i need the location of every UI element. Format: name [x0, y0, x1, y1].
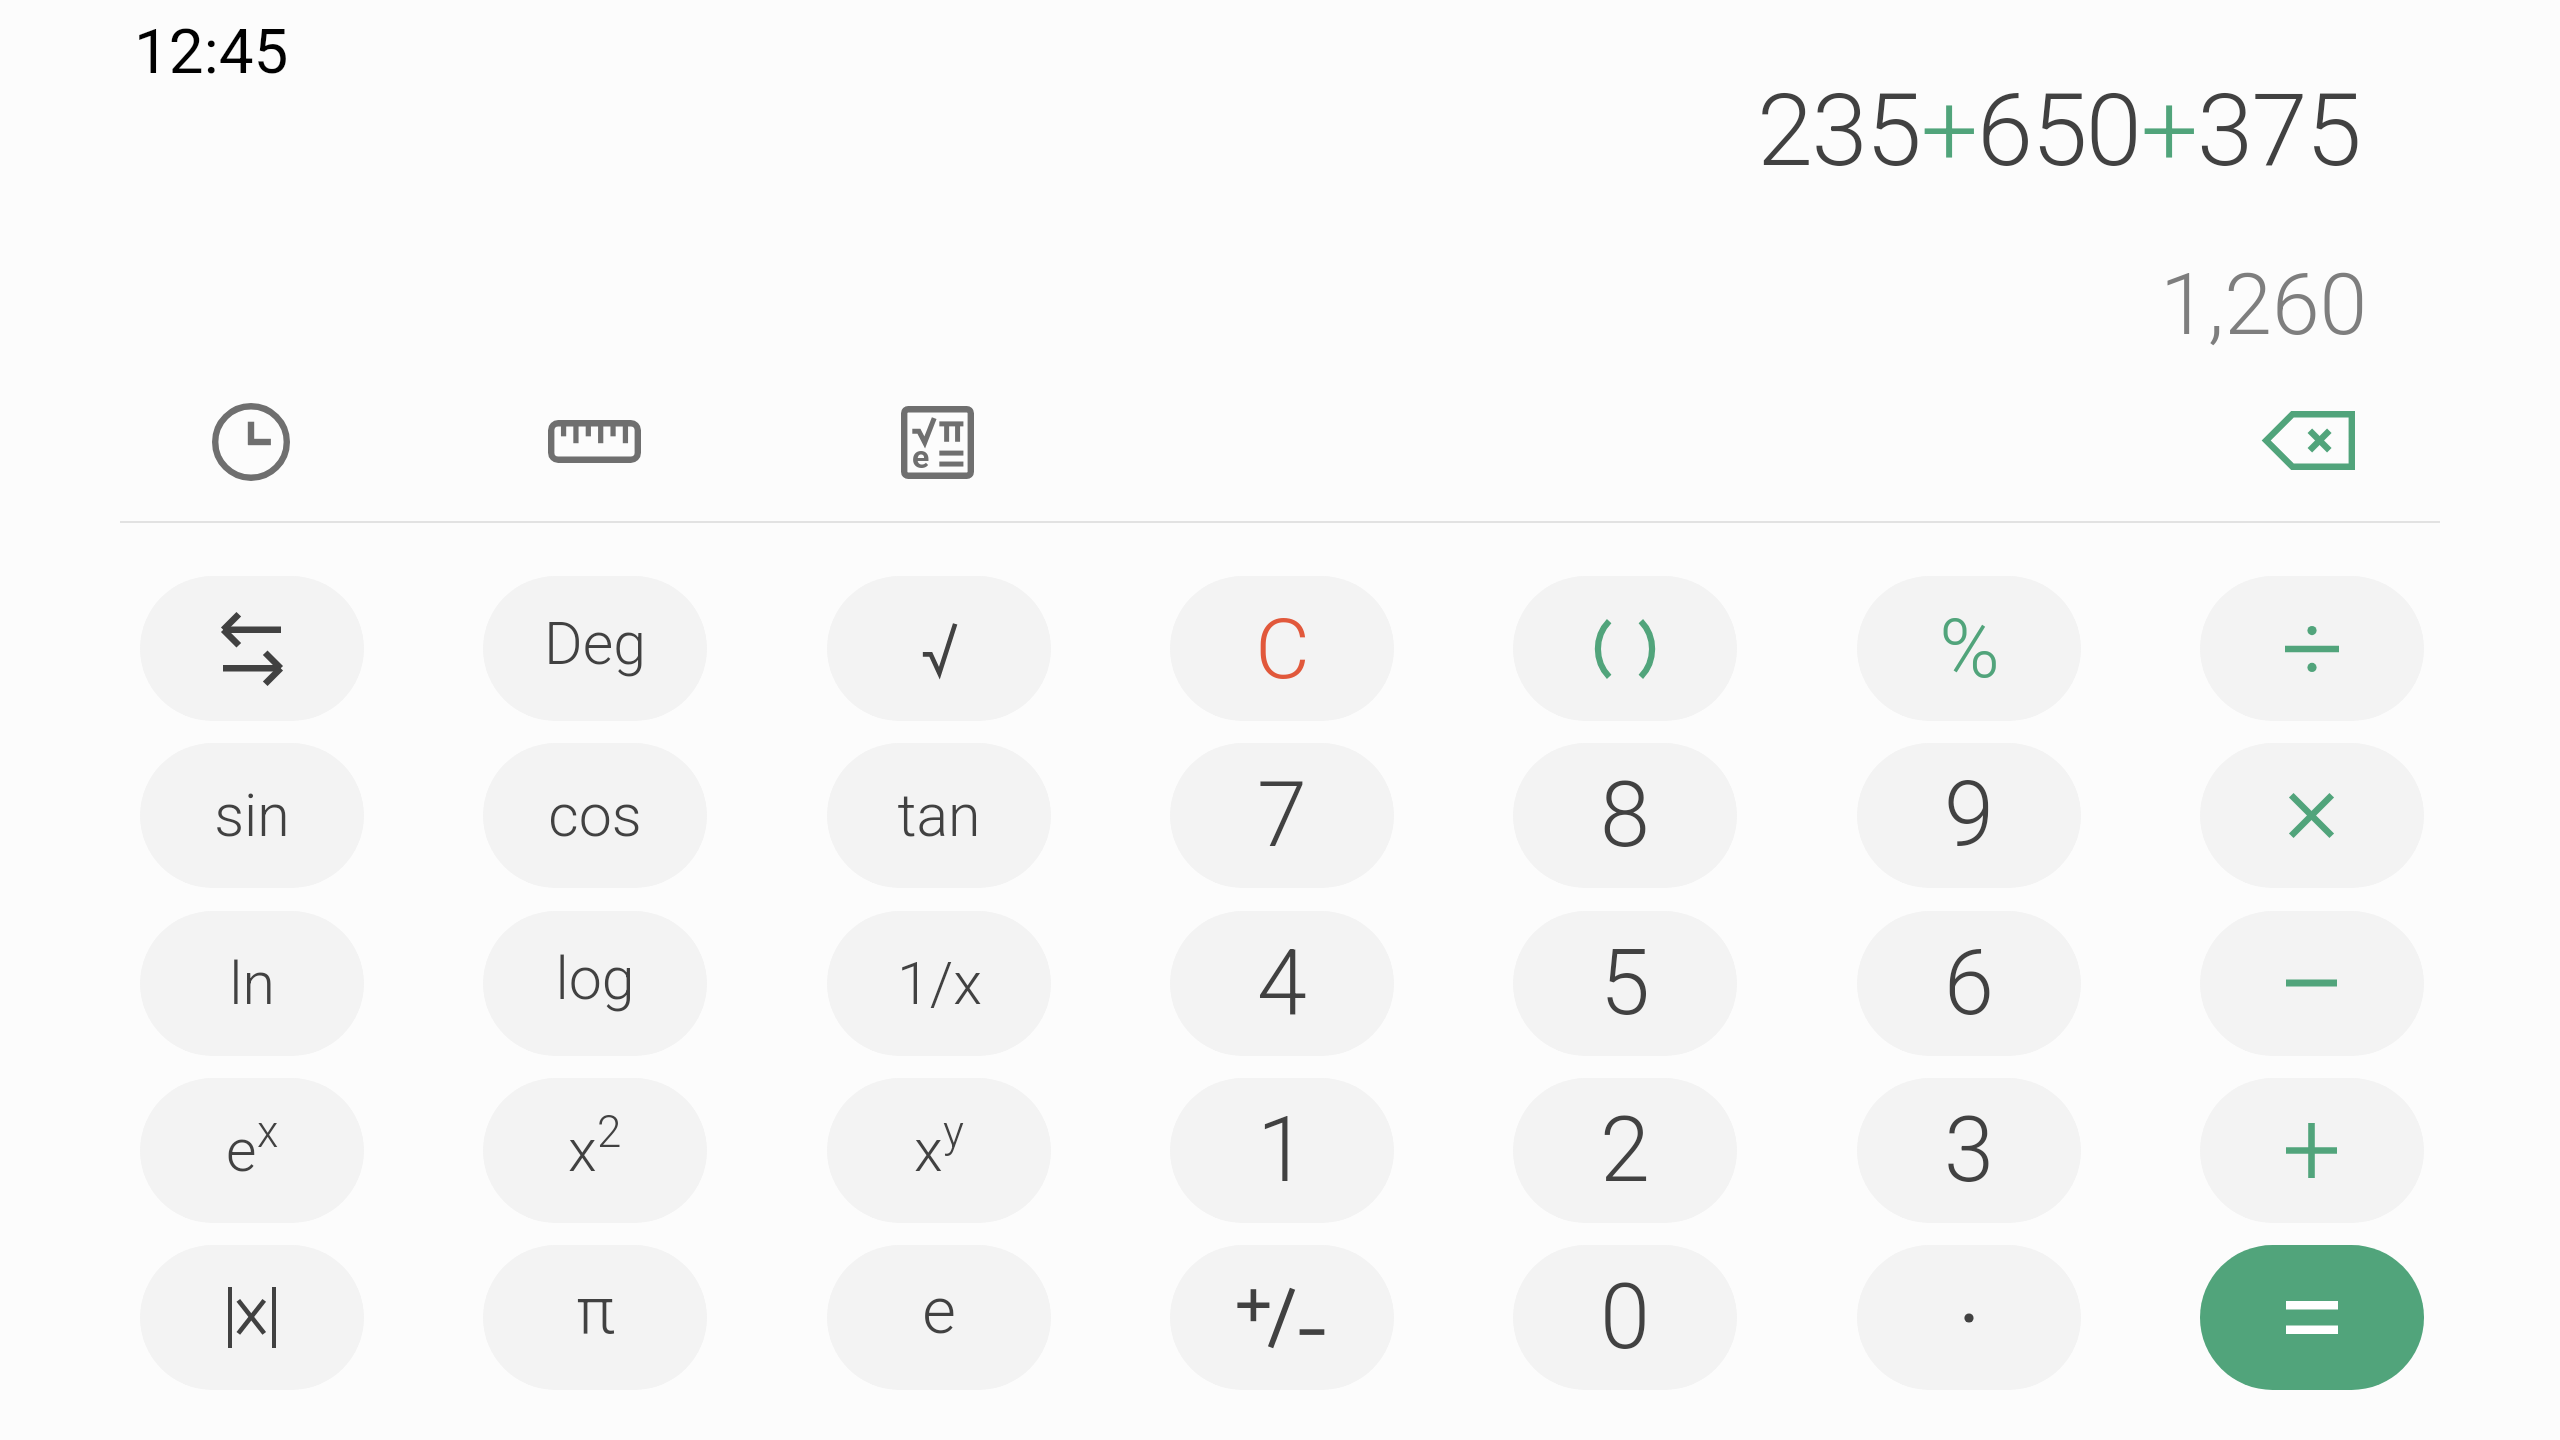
staticText: e: [912, 438, 930, 476]
staticText: cos: [548, 781, 642, 850]
staticText: 1/x: [897, 949, 982, 1018]
button[interactable]: cos: [483, 743, 707, 888]
staticText: 6: [1944, 931, 1994, 1036]
staticText: +: [2141, 71, 2197, 189]
staticText: x: [914, 1116, 943, 1185]
button[interactable]: Parentheses: [1513, 576, 1737, 721]
staticText: 0: [1600, 1265, 1650, 1370]
button[interactable]: C: [1170, 576, 1394, 721]
staticText: 3: [1944, 1098, 1994, 1203]
button[interactable]: 6: [1857, 911, 2081, 1056]
button[interactable]: Deg: [483, 576, 707, 721]
staticText: +: [1921, 71, 1977, 189]
button[interactable]: Swap: [140, 576, 364, 721]
button[interactable]: Absolute value: [140, 1245, 364, 1390]
button[interactable]: Equals: [2200, 1245, 2424, 1390]
staticText: 235: [1757, 71, 1921, 189]
button[interactable]: 3: [1857, 1078, 2081, 1223]
staticText: 2: [1600, 1098, 1650, 1203]
staticText: e: [226, 1116, 257, 1185]
staticText: 4: [1257, 931, 1307, 1036]
staticText: C: [1255, 600, 1310, 698]
staticText: %: [1939, 601, 2000, 697]
staticText: y: [943, 1106, 964, 1158]
button[interactable]: Plus: [2200, 1078, 2424, 1223]
button[interactable]: %: [1857, 576, 2081, 721]
staticText: 375: [2197, 71, 2361, 189]
button[interactable]: Backspace: [2219, 375, 2399, 505]
button[interactable]: Scientific functions: [852, 377, 1022, 507]
staticText: ln: [229, 949, 275, 1018]
button[interactable]: e to the x: [140, 1078, 364, 1223]
button[interactable]: 7: [1170, 743, 1394, 888]
staticText: 2: [597, 1106, 622, 1158]
button[interactable]: 4: [1170, 911, 1394, 1056]
staticText: 8: [1600, 763, 1650, 868]
staticText: x: [257, 1106, 279, 1158]
staticText: tan: [897, 781, 981, 850]
staticText: sin: [214, 781, 290, 850]
staticText: 1: [1257, 1098, 1307, 1203]
button[interactable]: Decimal point: [1857, 1245, 2081, 1390]
button[interactable]: Unit converter: [509, 376, 679, 506]
button[interactable]: π: [483, 1245, 707, 1390]
staticText: 1,260: [2160, 254, 2368, 355]
button[interactable]: Divide: [2200, 576, 2424, 721]
button[interactable]: Plus minus: [1170, 1245, 1394, 1390]
staticText: 650: [1977, 71, 2141, 189]
button[interactable]: x to the y: [827, 1078, 1051, 1223]
button[interactable]: tan: [827, 743, 1051, 888]
staticText: 5: [1600, 931, 1650, 1036]
button[interactable]: log: [483, 911, 707, 1056]
staticText: Deg: [544, 609, 646, 678]
staticText: 9: [1944, 763, 1994, 868]
button[interactable]: 5: [1513, 911, 1737, 1056]
button[interactable]: e: [827, 1245, 1051, 1390]
button[interactable]: 0: [1513, 1245, 1737, 1390]
button[interactable]: sin: [140, 743, 364, 888]
staticText: log: [555, 944, 635, 1013]
staticText: 12:45: [134, 15, 289, 88]
staticText: x: [568, 1116, 597, 1185]
button[interactable]: 8: [1513, 743, 1737, 888]
button[interactable]: ln: [140, 911, 364, 1056]
button[interactable]: History: [166, 377, 336, 507]
button[interactable]: Minus: [2200, 911, 2424, 1056]
button[interactable]: 2: [1513, 1078, 1737, 1223]
staticText: 7: [1257, 763, 1307, 868]
button[interactable]: x squared: [483, 1078, 707, 1223]
button[interactable]: 1/x: [827, 911, 1051, 1056]
staticText: e: [922, 1273, 956, 1349]
button[interactable]: 1: [1170, 1078, 1394, 1223]
button[interactable]: 9: [1857, 743, 2081, 888]
staticText: π: [576, 1273, 615, 1349]
button[interactable]: Square root: [827, 576, 1051, 721]
button[interactable]: Multiply: [2200, 743, 2424, 888]
